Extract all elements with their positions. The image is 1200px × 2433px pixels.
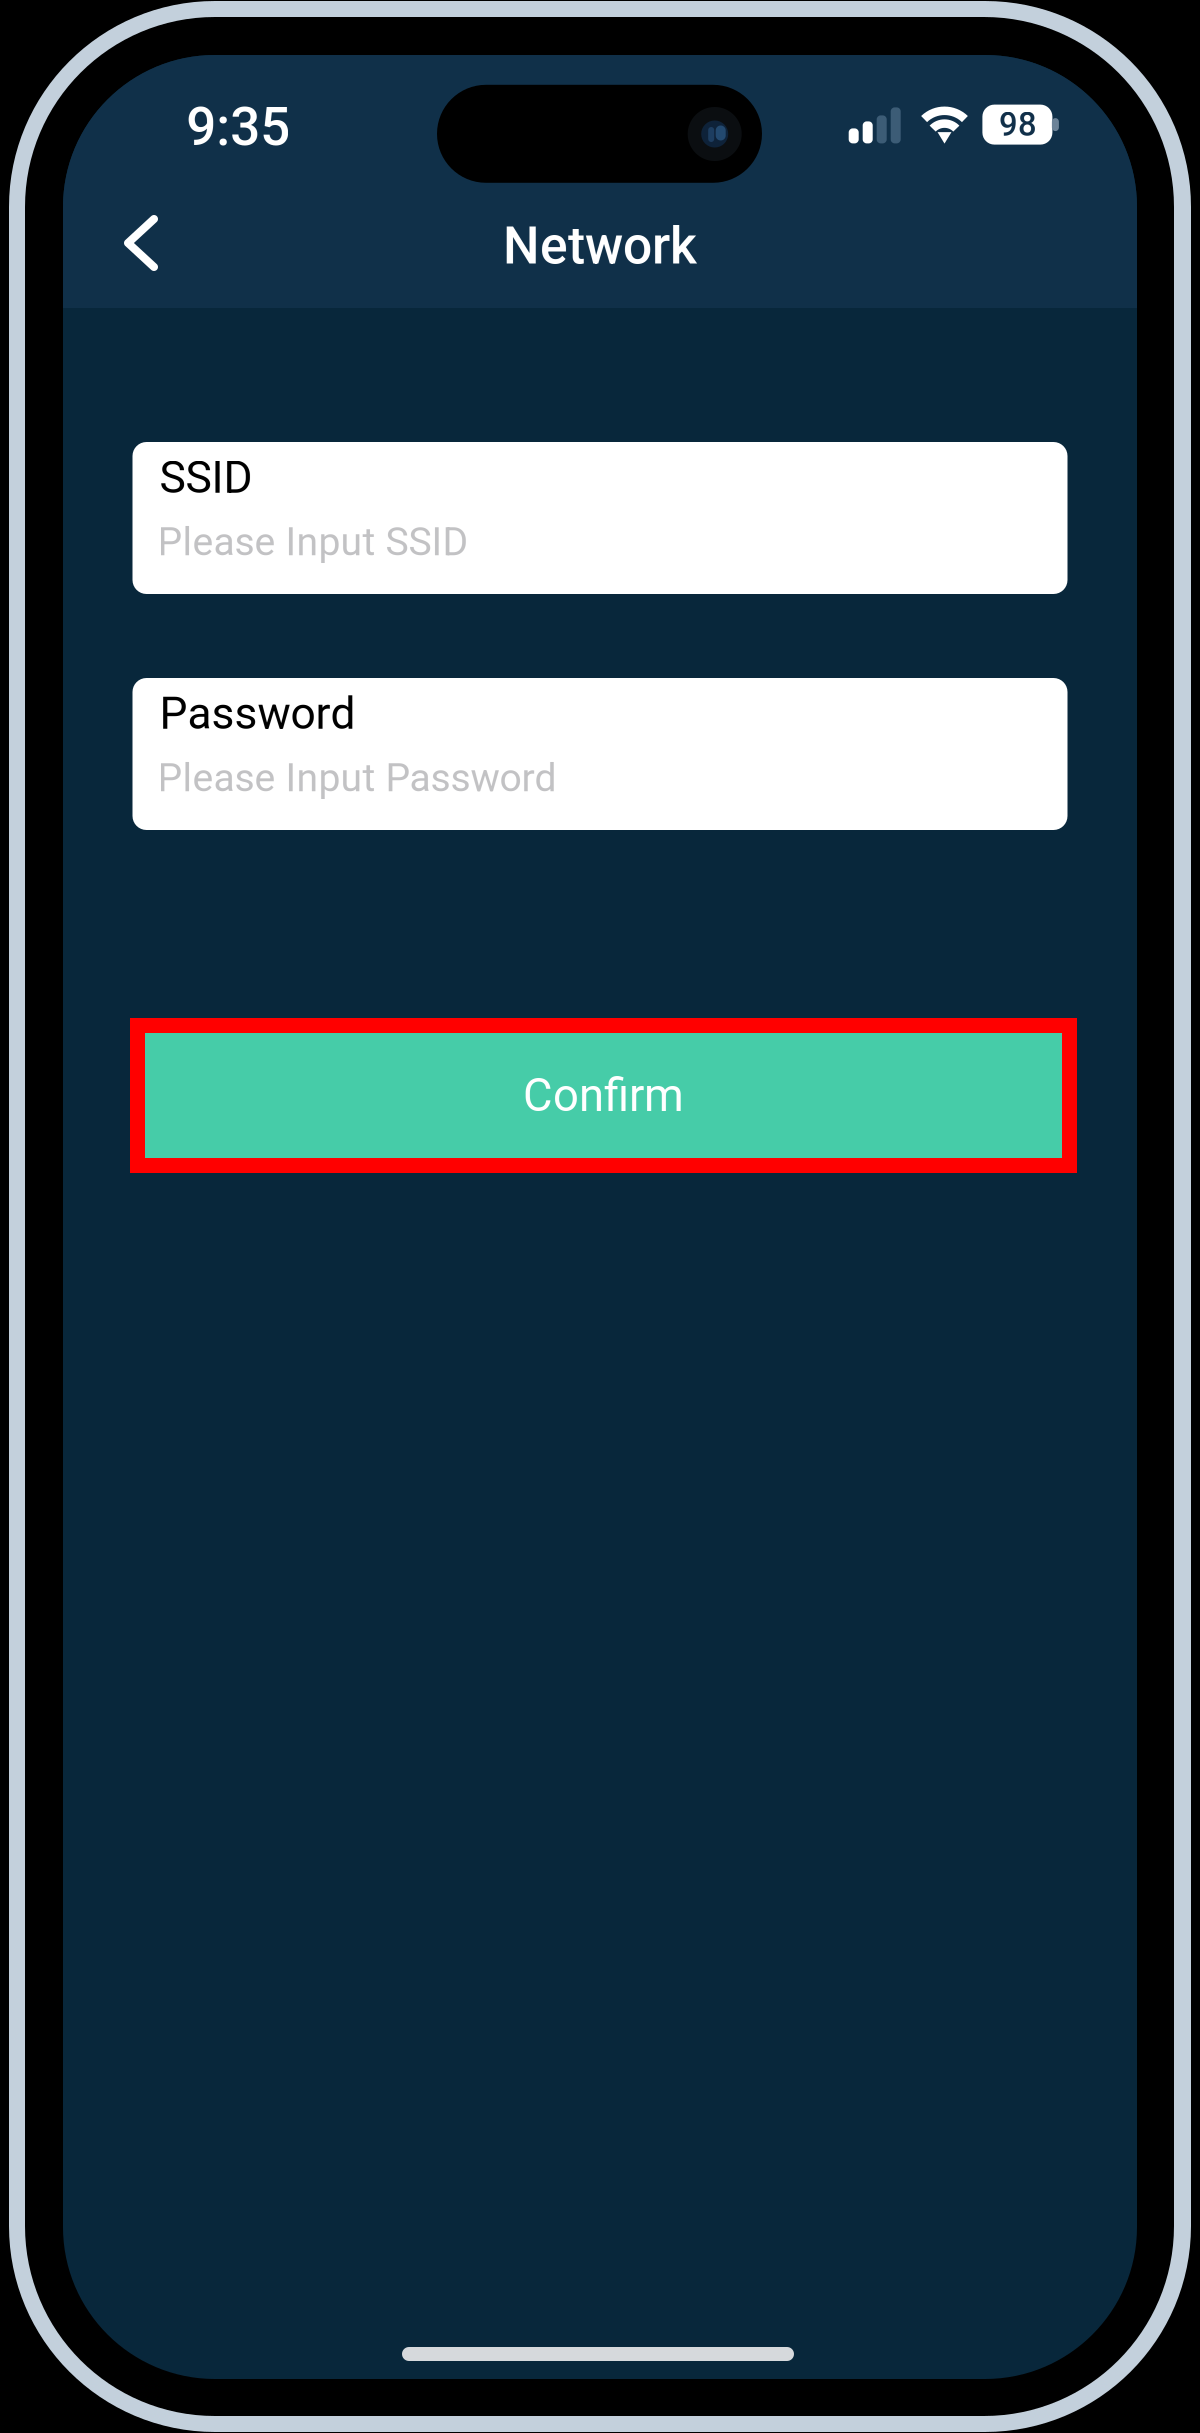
staticText: Please Input SSID [157, 519, 468, 565]
staticText: Network [503, 216, 697, 276]
button[interactable]: Back [91, 193, 191, 293]
staticText: 9:35 [186, 96, 290, 158]
staticText: Confirm [523, 1069, 684, 1122]
button[interactable]: Confirm [145, 1033, 1062, 1158]
staticText: 98 [999, 105, 1037, 144]
staticText: Password [159, 688, 355, 739]
staticText: Please Input Password [157, 755, 556, 801]
staticText: SSID [159, 452, 252, 503]
